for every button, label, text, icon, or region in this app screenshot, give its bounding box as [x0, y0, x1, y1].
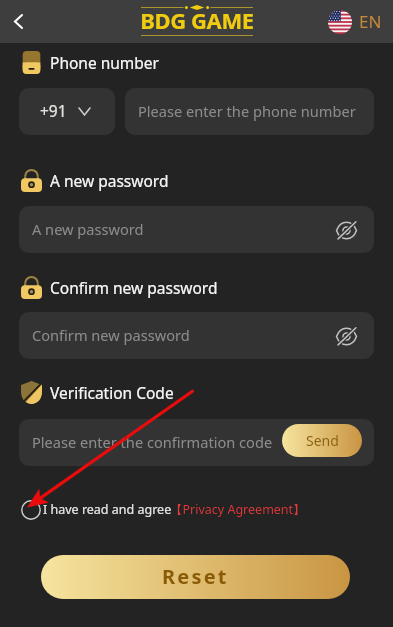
button[interactable]: Please enter the phone number: [125, 88, 374, 135]
button[interactable]: Please enter the confirmation code: [19, 419, 374, 466]
staticText: A new password: [32, 219, 144, 239]
staticText: Confirm new password: [32, 325, 190, 345]
button[interactable]: Reset: [41, 555, 350, 599]
staticText: Reset: [162, 563, 229, 590]
staticText: Phone number: [50, 52, 160, 73]
button[interactable]: Toggle password visibility: [331, 215, 361, 245]
staticText: Please enter the confirmation code: [32, 432, 273, 452]
staticText: Send: [306, 431, 339, 450]
button[interactable]: Toggle password visibility: [331, 321, 361, 351]
button[interactable]: Back: [0, 3, 36, 39]
button[interactable]: +91: [19, 88, 115, 135]
button[interactable]: EN: [328, 10, 382, 34]
staticText: 【Privacy Agreement】: [170, 501, 306, 518]
staticText: Please enter the phone number: [138, 101, 356, 121]
staticText: I have read and agree: [43, 501, 172, 518]
button[interactable]: Agree checkbox: [19, 498, 172, 521]
button[interactable]: Send: [282, 424, 362, 457]
staticText: EN: [359, 10, 382, 33]
staticText: BDG GAME: [112, 5, 282, 35]
staticText: Verification Code: [50, 382, 174, 403]
button[interactable]: A new password: [19, 206, 374, 253]
staticText: A new password: [50, 170, 169, 191]
button[interactable]: 【Privacy Agreement】: [170, 498, 306, 521]
staticText: Confirm new password: [50, 277, 218, 298]
other: Agree checkbox: [19, 498, 42, 521]
button[interactable]: Confirm new password: [19, 312, 374, 359]
staticText: +91: [40, 100, 67, 121]
